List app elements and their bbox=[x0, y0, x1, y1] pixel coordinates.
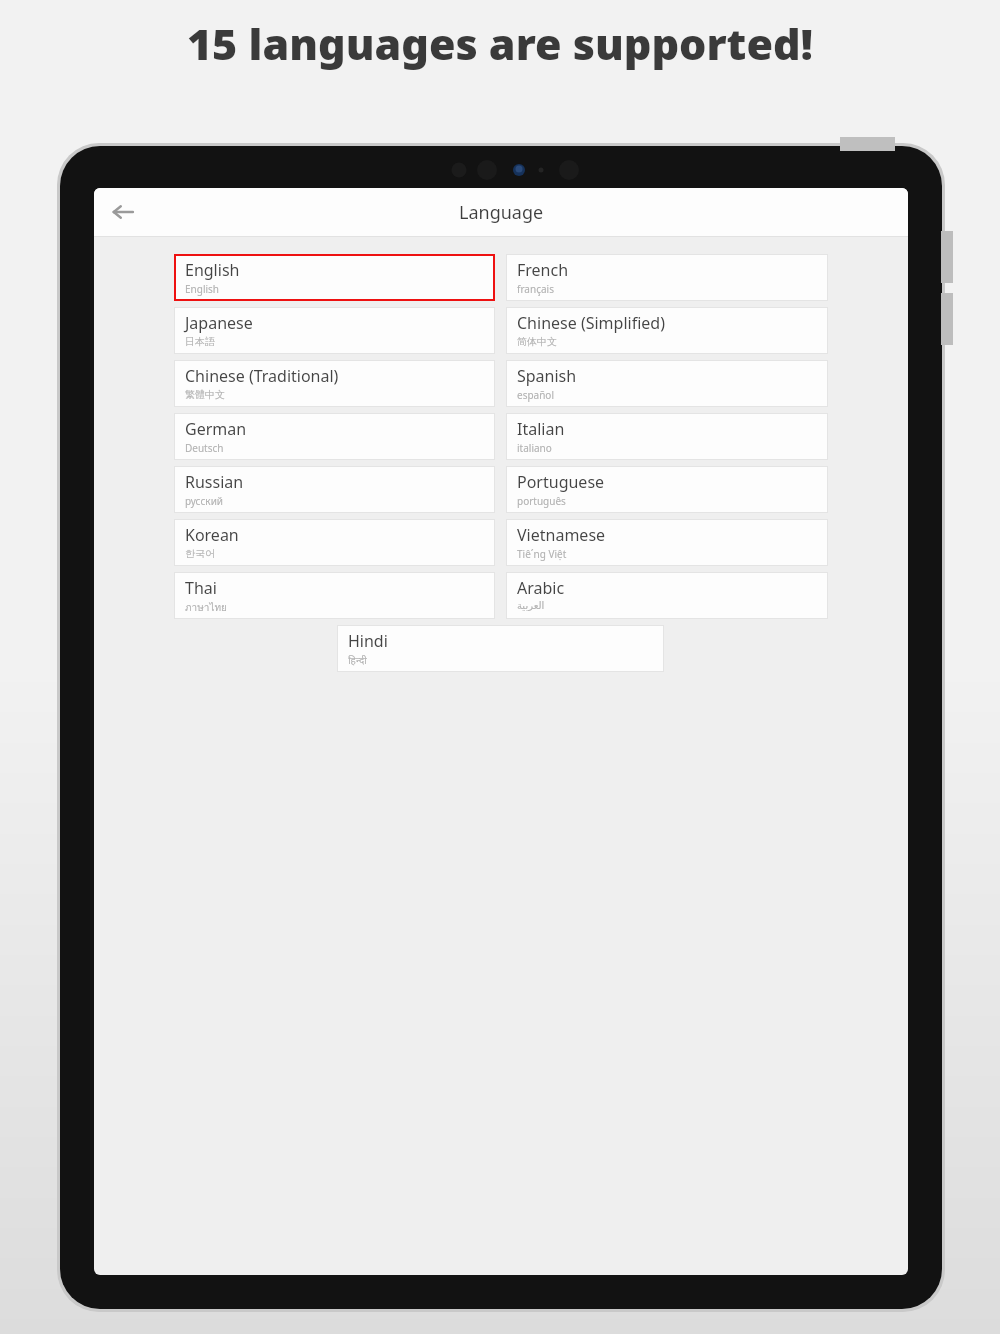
staticText: Korean bbox=[185, 524, 239, 546]
button[interactable]: French bbox=[506, 254, 828, 301]
button[interactable]: Arabic bbox=[506, 572, 828, 619]
staticText: Vietnamese bbox=[517, 524, 606, 546]
staticText: Portuguese bbox=[517, 471, 605, 493]
button[interactable]: Chinese (Simplified) bbox=[506, 307, 828, 354]
button[interactable]: German bbox=[174, 413, 495, 460]
button[interactable]: Back bbox=[102, 191, 144, 233]
button[interactable]: Russian bbox=[174, 466, 495, 513]
staticText: हिन्दी bbox=[348, 653, 367, 667]
staticText: English bbox=[185, 282, 220, 296]
staticText: Chinese (Traditional) bbox=[185, 365, 339, 387]
staticText: German bbox=[185, 418, 247, 440]
button[interactable]: Spanish bbox=[506, 360, 828, 407]
staticText: Language bbox=[459, 200, 544, 225]
staticText: Arabic bbox=[517, 577, 565, 599]
staticText: Italian bbox=[517, 418, 565, 440]
staticText: Deutsch bbox=[185, 441, 224, 455]
button[interactable]: Hindi bbox=[337, 625, 664, 672]
button[interactable]: Chinese (Traditional) bbox=[174, 360, 495, 407]
staticText: Chinese (Simplified) bbox=[517, 312, 665, 334]
staticText: العربية bbox=[517, 600, 545, 612]
staticText: 日本語 bbox=[185, 335, 215, 348]
button[interactable]: Italian bbox=[506, 413, 828, 460]
staticText: English bbox=[185, 259, 240, 281]
staticText: Hindi bbox=[348, 630, 388, 652]
staticText: ภาษาไทย bbox=[185, 600, 227, 616]
staticText: Tiê´ng Việt bbox=[517, 547, 567, 561]
staticText: Japanese bbox=[185, 312, 253, 334]
staticText: 한국어 bbox=[185, 547, 215, 560]
staticText: español bbox=[517, 388, 554, 402]
button[interactable]: Korean bbox=[174, 519, 495, 566]
staticText: italiano bbox=[517, 441, 552, 455]
staticText: português bbox=[517, 494, 566, 508]
staticText: 15 languages are supported! bbox=[0, 14, 1000, 73]
button[interactable]: Thai bbox=[174, 572, 495, 619]
staticText: Russian bbox=[185, 471, 244, 493]
staticText: 简体中文 bbox=[517, 335, 557, 348]
staticText: русский bbox=[185, 494, 224, 508]
staticText: French bbox=[517, 259, 569, 281]
staticText: Thai bbox=[185, 577, 217, 599]
button[interactable]: English bbox=[174, 254, 495, 301]
staticText: français bbox=[517, 282, 554, 296]
button[interactable]: Vietnamese bbox=[506, 519, 828, 566]
staticText: 繁體中文 bbox=[185, 388, 225, 401]
staticText: Spanish bbox=[517, 365, 577, 387]
button[interactable]: Portuguese bbox=[506, 466, 828, 513]
button[interactable]: Japanese bbox=[174, 307, 495, 354]
